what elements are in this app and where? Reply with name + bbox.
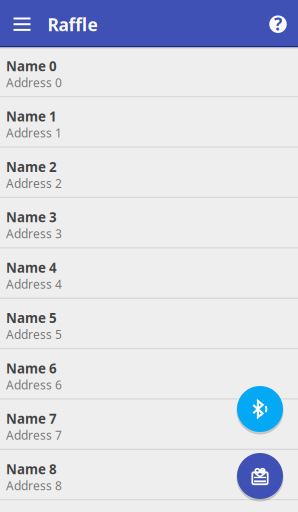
button[interactable]: Bluetooth: [236, 385, 284, 433]
staticText: Name 6: [6, 359, 57, 377]
staticText: Name 4: [6, 259, 57, 276]
button[interactable]: Name 5: [0, 299, 298, 349]
button[interactable]: Menu: [0, 0, 44, 46]
staticText: Name 2: [6, 158, 57, 175]
staticText: Address 6: [6, 377, 62, 393]
staticText: ?: [274, 12, 282, 35]
staticText: Address 7: [6, 427, 62, 443]
staticText: Name 0: [6, 57, 57, 75]
button[interactable]: Help: [260, 0, 296, 46]
staticText: Name 5: [6, 309, 57, 327]
staticText: Address 5: [6, 326, 62, 342]
staticText: Address 8: [6, 478, 62, 493]
button[interactable]: Raffle prize: [236, 452, 284, 500]
button[interactable]: Name 1: [0, 97, 298, 148]
button[interactable]: Name 7: [0, 400, 298, 450]
staticText: Name 8: [6, 460, 57, 478]
staticText: Address 2: [6, 175, 62, 191]
staticText: Name 3: [6, 208, 57, 226]
staticText: Address 1: [6, 125, 62, 141]
staticText: Address 4: [6, 276, 62, 292]
button[interactable]: Name 3: [0, 198, 298, 249]
staticText: Raffle: [47, 13, 97, 36]
staticText: Address 3: [6, 226, 62, 242]
button[interactable]: Name 2: [0, 148, 298, 198]
button[interactable]: Name 0: [0, 47, 298, 97]
staticText: Name 7: [6, 410, 57, 427]
button[interactable]: Name 8: [0, 450, 298, 500]
button[interactable]: Name 4: [0, 249, 298, 299]
button[interactable]: Name 6: [0, 349, 298, 400]
staticText: Name 1: [6, 107, 57, 125]
staticText: Address 0: [6, 75, 62, 90]
